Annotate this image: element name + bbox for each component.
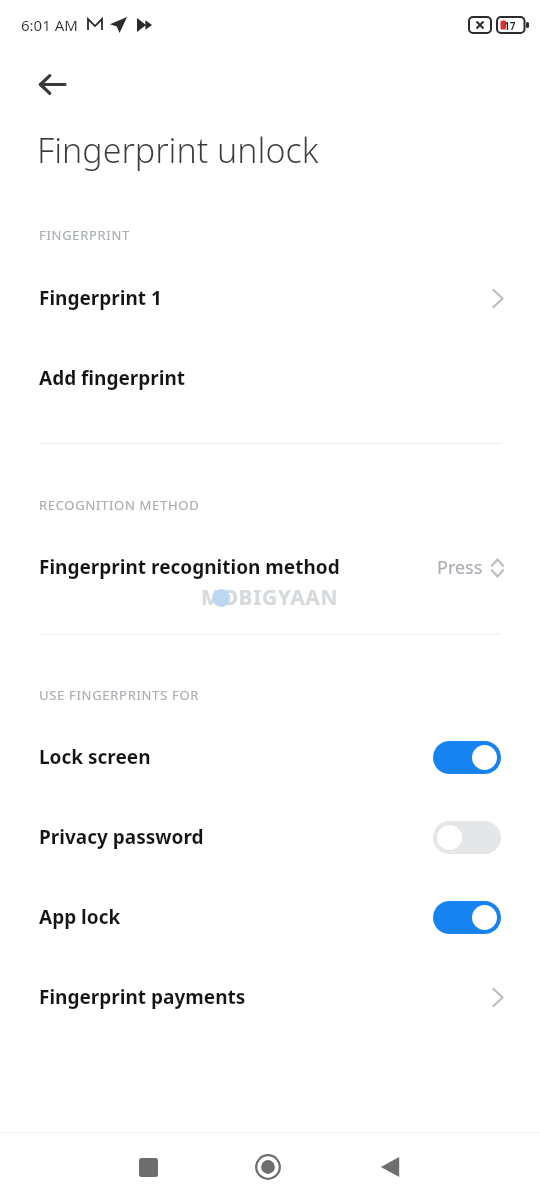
staticText: Fingerprint recognition method (39, 554, 340, 580)
staticText: Press (437, 555, 483, 580)
button[interactable]: App lock (0, 887, 540, 947)
staticText: USE FINGERPRINTS FOR (39, 686, 200, 704)
staticText: Fingerprint payments (39, 984, 246, 1010)
button[interactable]: Recents (122, 1141, 174, 1193)
staticText: FINGERPRINT (39, 226, 130, 244)
staticText: Fingerprint unlock (37, 127, 319, 173)
staticText: 6:01 AM (21, 15, 78, 35)
button[interactable]: Add fingerprint (0, 348, 540, 408)
button[interactable]: Fingerprint recognition method (0, 537, 540, 597)
button[interactable]: Lock screen (0, 727, 540, 787)
staticText: RECOGNITION METHOD (39, 496, 200, 514)
button[interactable]: Privacy password (0, 807, 540, 867)
staticText: App lock (39, 904, 121, 930)
button[interactable]: Off (433, 821, 501, 854)
button[interactable]: Back (25, 57, 79, 111)
button[interactable]: Back (364, 1141, 416, 1193)
button[interactable]: On (433, 901, 501, 934)
staticText: Privacy password (39, 824, 204, 850)
staticText: Add fingerprint (39, 365, 186, 391)
button[interactable]: Fingerprint 1 (0, 268, 540, 328)
staticText: 17 (504, 19, 516, 33)
staticText: Lock screen (39, 744, 151, 770)
staticText: Fingerprint 1 (39, 285, 162, 311)
button[interactable]: On (433, 741, 501, 774)
button[interactable]: Home (242, 1141, 294, 1193)
staticText: MOBIGYAAN (201, 583, 339, 612)
button[interactable]: Fingerprint payments (0, 967, 540, 1027)
